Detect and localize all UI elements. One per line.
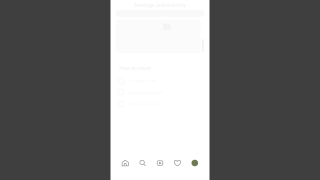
button[interactable]: Search bbox=[110, 10, 209, 17]
button[interactable]: Likes bbox=[169, 152, 186, 174]
button[interactable]: Accounts Center bbox=[110, 75, 209, 87]
button[interactable]: Profile bbox=[186, 152, 203, 174]
staticText: Your account bbox=[119, 64, 151, 72]
button[interactable]: Your activity feed bbox=[110, 98, 209, 110]
button[interactable] bbox=[110, 19, 209, 53]
button[interactable]: Saved and archived bbox=[110, 87, 209, 98]
staticText: Settings and activity bbox=[134, 1, 186, 9]
button[interactable]: Reels bbox=[151, 152, 169, 174]
button[interactable]: Search bbox=[134, 152, 151, 174]
button[interactable]: Home bbox=[116, 152, 134, 174]
